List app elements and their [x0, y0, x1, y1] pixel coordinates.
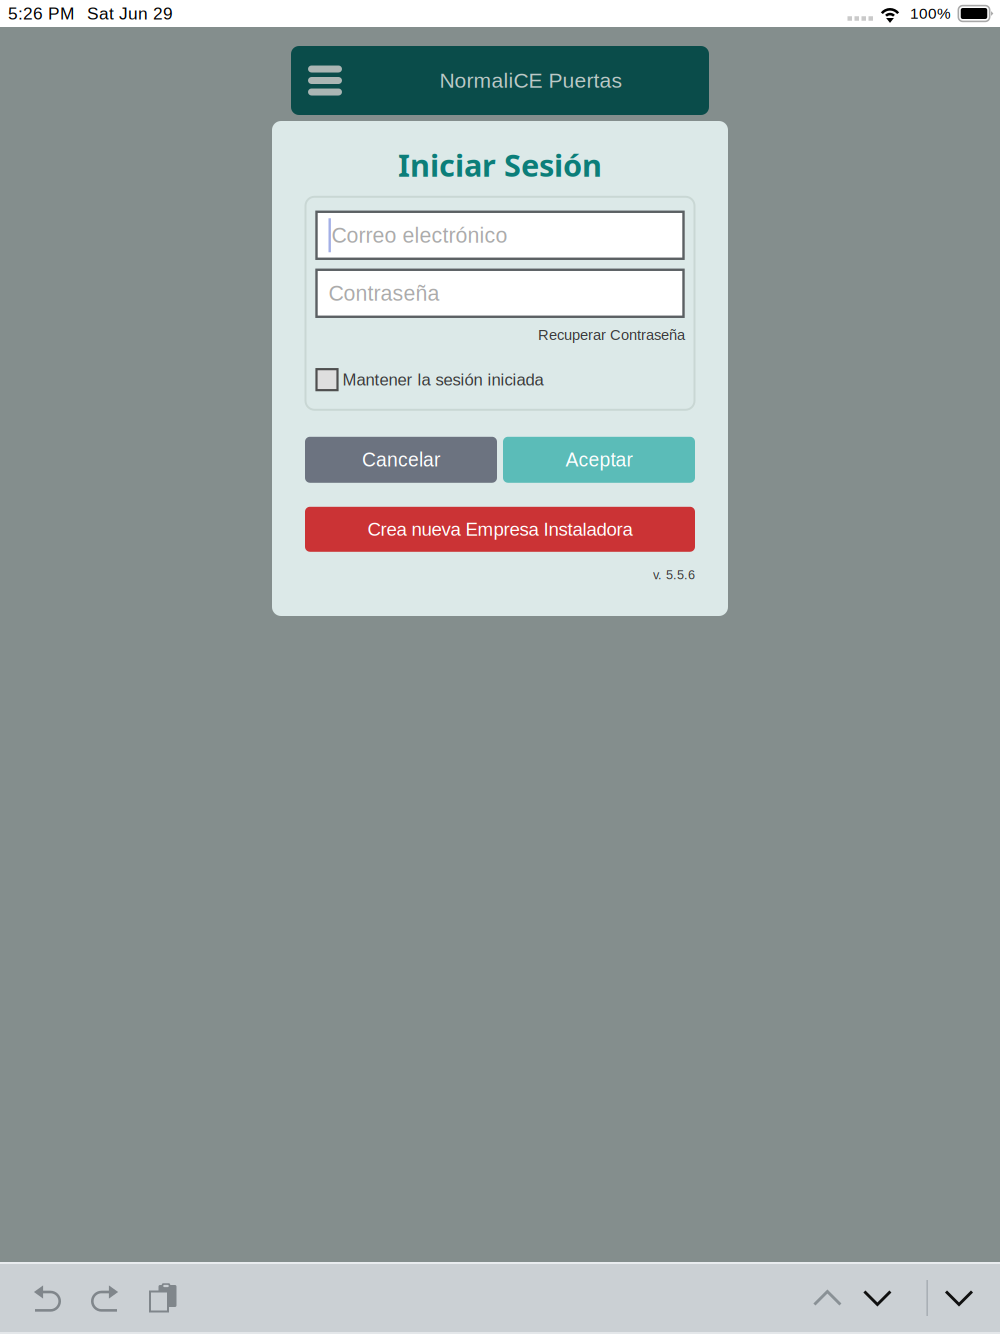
button[interactable]: Next field	[852, 1262, 902, 1334]
staticText: Crea nueva Empresa Instaladora	[367, 519, 632, 540]
staticText: Sat Jun 29	[87, 4, 173, 23]
button[interactable]: Recuperar Contraseña	[538, 327, 685, 343]
staticText: 5:26 PM	[8, 4, 74, 23]
button[interactable]: Mantener la sesión iniciada	[316, 369, 337, 390]
staticText: Recuperar Contraseña	[538, 327, 685, 343]
staticText: Correo electrónico	[331, 223, 507, 247]
button[interactable]: Aceptar	[503, 437, 695, 483]
staticText: v. 5.5.6	[653, 568, 695, 582]
staticText: Cancelar	[362, 449, 440, 471]
staticText: Iniciar Sesión	[398, 144, 602, 186]
button[interactable]: Paste	[134, 1262, 192, 1334]
button[interactable]: Crea nueva Empresa Instaladora	[305, 507, 695, 552]
staticText: 100%	[910, 5, 951, 22]
staticText: Mantener la sesión iniciada	[342, 370, 543, 389]
button[interactable]: Cancelar	[305, 437, 497, 483]
staticText: Contraseña	[328, 281, 439, 305]
button[interactable]: Redo	[76, 1262, 134, 1334]
staticText: Aceptar	[565, 449, 632, 471]
button[interactable]: Previous field	[802, 1262, 852, 1334]
staticText: NormaliCE Puertas	[439, 69, 622, 92]
button[interactable]: Undo	[18, 1262, 76, 1334]
button[interactable]: Menu	[299, 52, 351, 108]
button[interactable]: Hide keyboard	[934, 1262, 984, 1334]
